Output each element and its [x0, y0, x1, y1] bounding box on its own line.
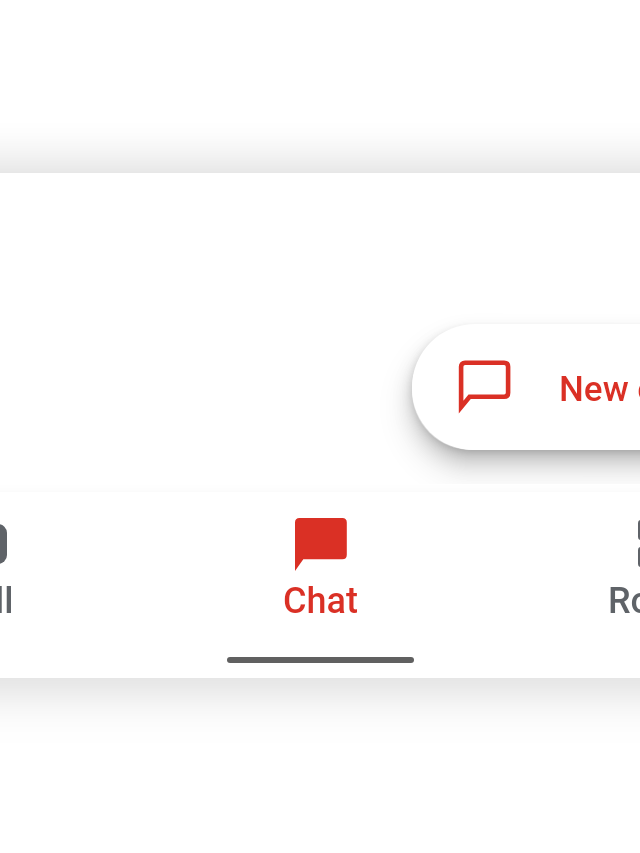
staticText: Rooms [608, 580, 640, 622]
staticText: Call [0, 580, 14, 622]
button[interactable]: Call [0, 492, 150, 632]
button[interactable]: New chat [412, 324, 640, 450]
button[interactable]: Rooms [495, 492, 640, 632]
button[interactable]: Chat [150, 492, 490, 632]
staticText: New chat [559, 369, 640, 410]
staticText: Chat [283, 580, 358, 622]
